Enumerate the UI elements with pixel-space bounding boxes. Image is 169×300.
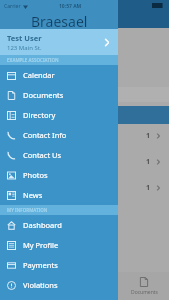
button[interactable]: Test User (0, 29, 118, 55)
staticText: Account Info (13, 66, 52, 74)
staticText: Directory (23, 110, 56, 120)
staticText: Contact Info (23, 130, 67, 140)
staticText: News (23, 190, 43, 200)
button[interactable]: 1 (0, 124, 169, 148)
button[interactable]: Violations (0, 275, 118, 295)
staticText: 1 (146, 157, 151, 167)
staticText: 1 (146, 131, 151, 141)
staticText: Documents (23, 90, 64, 100)
button[interactable]: 1 (0, 150, 169, 174)
staticText: 123 Main St. (7, 44, 42, 52)
staticText: Braesael (31, 12, 88, 29)
staticText: Test User (7, 33, 42, 43)
button[interactable]: Calendar (0, 65, 118, 85)
button[interactable]: My Profile (0, 235, 118, 255)
staticText: 10:57 AM (59, 3, 82, 10)
staticText: Violations (23, 280, 58, 290)
staticText: Photos (23, 170, 48, 180)
staticText: 1 (146, 183, 151, 193)
button[interactable]: Documents (0, 85, 118, 105)
button[interactable]: Account Info (6, 62, 80, 77)
staticText: Payments (23, 260, 58, 270)
staticText: Calendar (23, 70, 55, 80)
button[interactable]: Dashboard (0, 215, 118, 235)
button[interactable]: Contact Info (0, 125, 118, 145)
staticText: My Profile (23, 240, 59, 250)
button[interactable]: Contact Us (0, 145, 118, 165)
button[interactable]: 1 (0, 176, 169, 200)
button[interactable]: News (0, 185, 118, 205)
button[interactable]: Documents (119, 272, 169, 300)
staticText: Carrier (4, 3, 21, 10)
staticText: Documents (131, 289, 158, 296)
staticText: Dashboard (23, 220, 62, 230)
button[interactable]: Directory (0, 105, 118, 125)
staticText: Contact Us (23, 150, 62, 160)
staticText: Add Account (62, 40, 107, 50)
button[interactable]: Payments (0, 255, 118, 275)
staticText: EXAMPLE ASSOCIATION (7, 57, 59, 63)
staticText: MY INFORMATION (7, 207, 48, 213)
button[interactable]: Photos (0, 165, 118, 185)
